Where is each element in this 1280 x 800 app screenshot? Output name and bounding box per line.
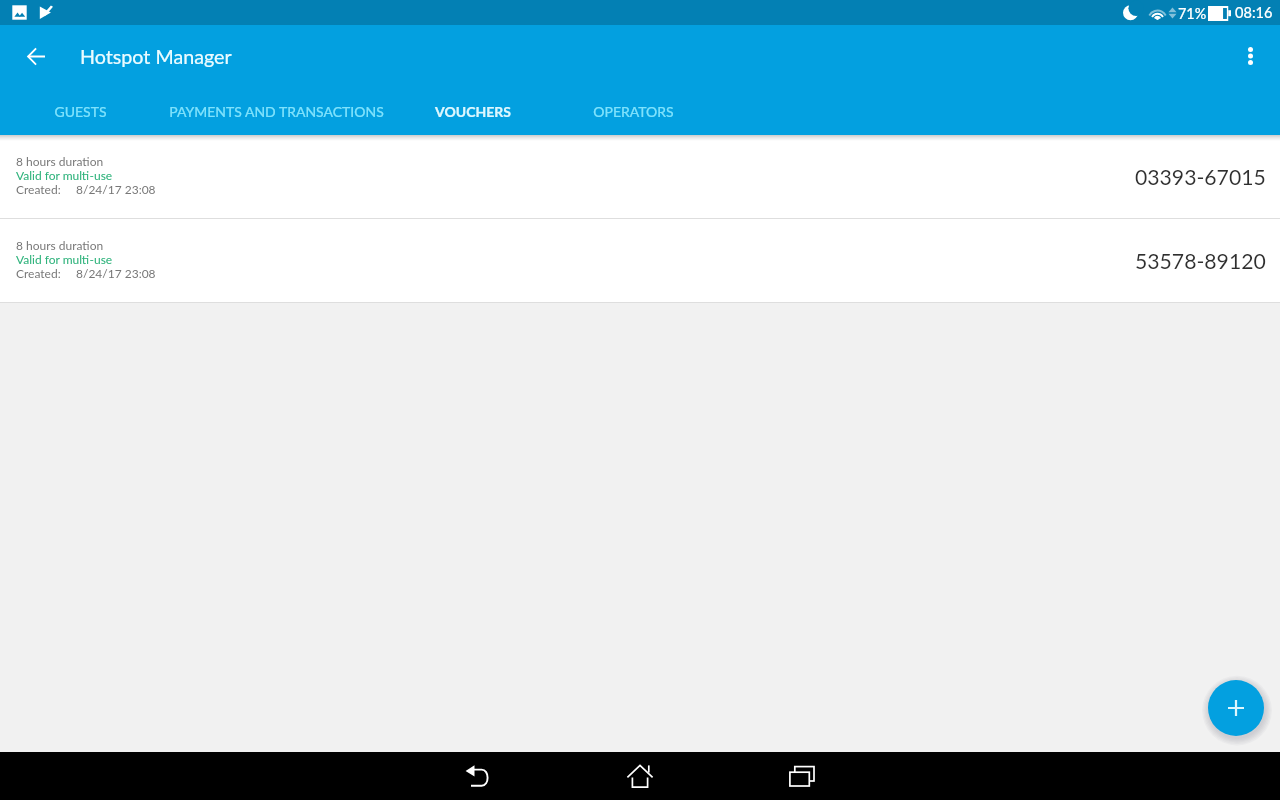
staticText: 8/24/17 23:08 (76, 266, 156, 280)
button[interactable]: 8 hours duration (0, 219, 1280, 302)
staticText: 08:16 (1235, 4, 1273, 22)
staticText: Valid for multi-use (16, 168, 113, 182)
button[interactable]: Add voucher (1208, 680, 1264, 736)
staticText: 71% (1178, 5, 1207, 22)
button[interactable]: OPERATORS (554, 88, 712, 135)
staticText: 8 hours duration (16, 154, 104, 168)
staticText: 53578-89120 (1135, 248, 1266, 273)
button[interactable]: Home (616, 752, 664, 800)
staticText: 8 hours duration (16, 238, 104, 252)
staticText: Hotspot Manager (80, 45, 232, 69)
button[interactable]: PAYMENTS AND TRANSACTIONS (160, 88, 392, 135)
button[interactable]: Back (454, 752, 502, 800)
button[interactable]: VOUCHERS (392, 88, 554, 135)
button[interactable]: More options (1226, 33, 1274, 81)
staticText: Created: (16, 266, 61, 280)
button[interactable]: Navigate up (12, 33, 60, 81)
staticText: OPERATORS (593, 103, 674, 120)
staticText: 03393-67015 (1135, 164, 1266, 189)
staticText: PAYMENTS AND TRANSACTIONS (169, 103, 384, 120)
staticText: VOUCHERS (435, 103, 511, 120)
button[interactable]: Recent apps (778, 752, 826, 800)
staticText: Created: (16, 182, 61, 196)
button[interactable]: 8 hours duration (0, 135, 1280, 218)
staticText: Valid for multi-use (16, 252, 113, 266)
button[interactable]: GUESTS (0, 88, 160, 135)
staticText: 8/24/17 23:08 (76, 182, 156, 196)
staticText: GUESTS (54, 103, 107, 120)
